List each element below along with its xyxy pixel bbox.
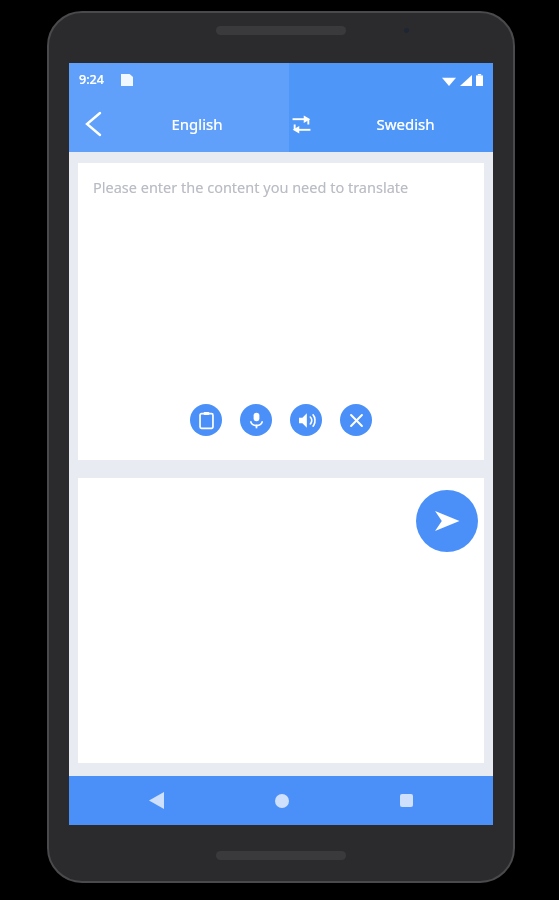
button[interactable]: Swedish xyxy=(325,96,485,152)
button[interactable]: Translate xyxy=(416,490,478,552)
button[interactable]: Voice input xyxy=(240,404,272,436)
staticText: Please enter the content you need to tra… xyxy=(93,177,409,197)
button[interactable]: Swap languages xyxy=(277,100,325,148)
button[interactable]: Paste xyxy=(190,404,222,436)
button[interactable]: Back xyxy=(69,100,117,148)
button[interactable]: Recent apps xyxy=(344,776,469,825)
button[interactable]: Speak xyxy=(290,404,322,436)
button[interactable]: Clear xyxy=(340,404,372,436)
button[interactable]: Home xyxy=(219,776,344,825)
button[interactable]: Back xyxy=(93,776,219,825)
button[interactable]: English xyxy=(117,96,277,152)
staticText: Swedish xyxy=(376,114,435,134)
staticText: 9:24 xyxy=(79,71,104,88)
staticText: English xyxy=(171,114,223,134)
